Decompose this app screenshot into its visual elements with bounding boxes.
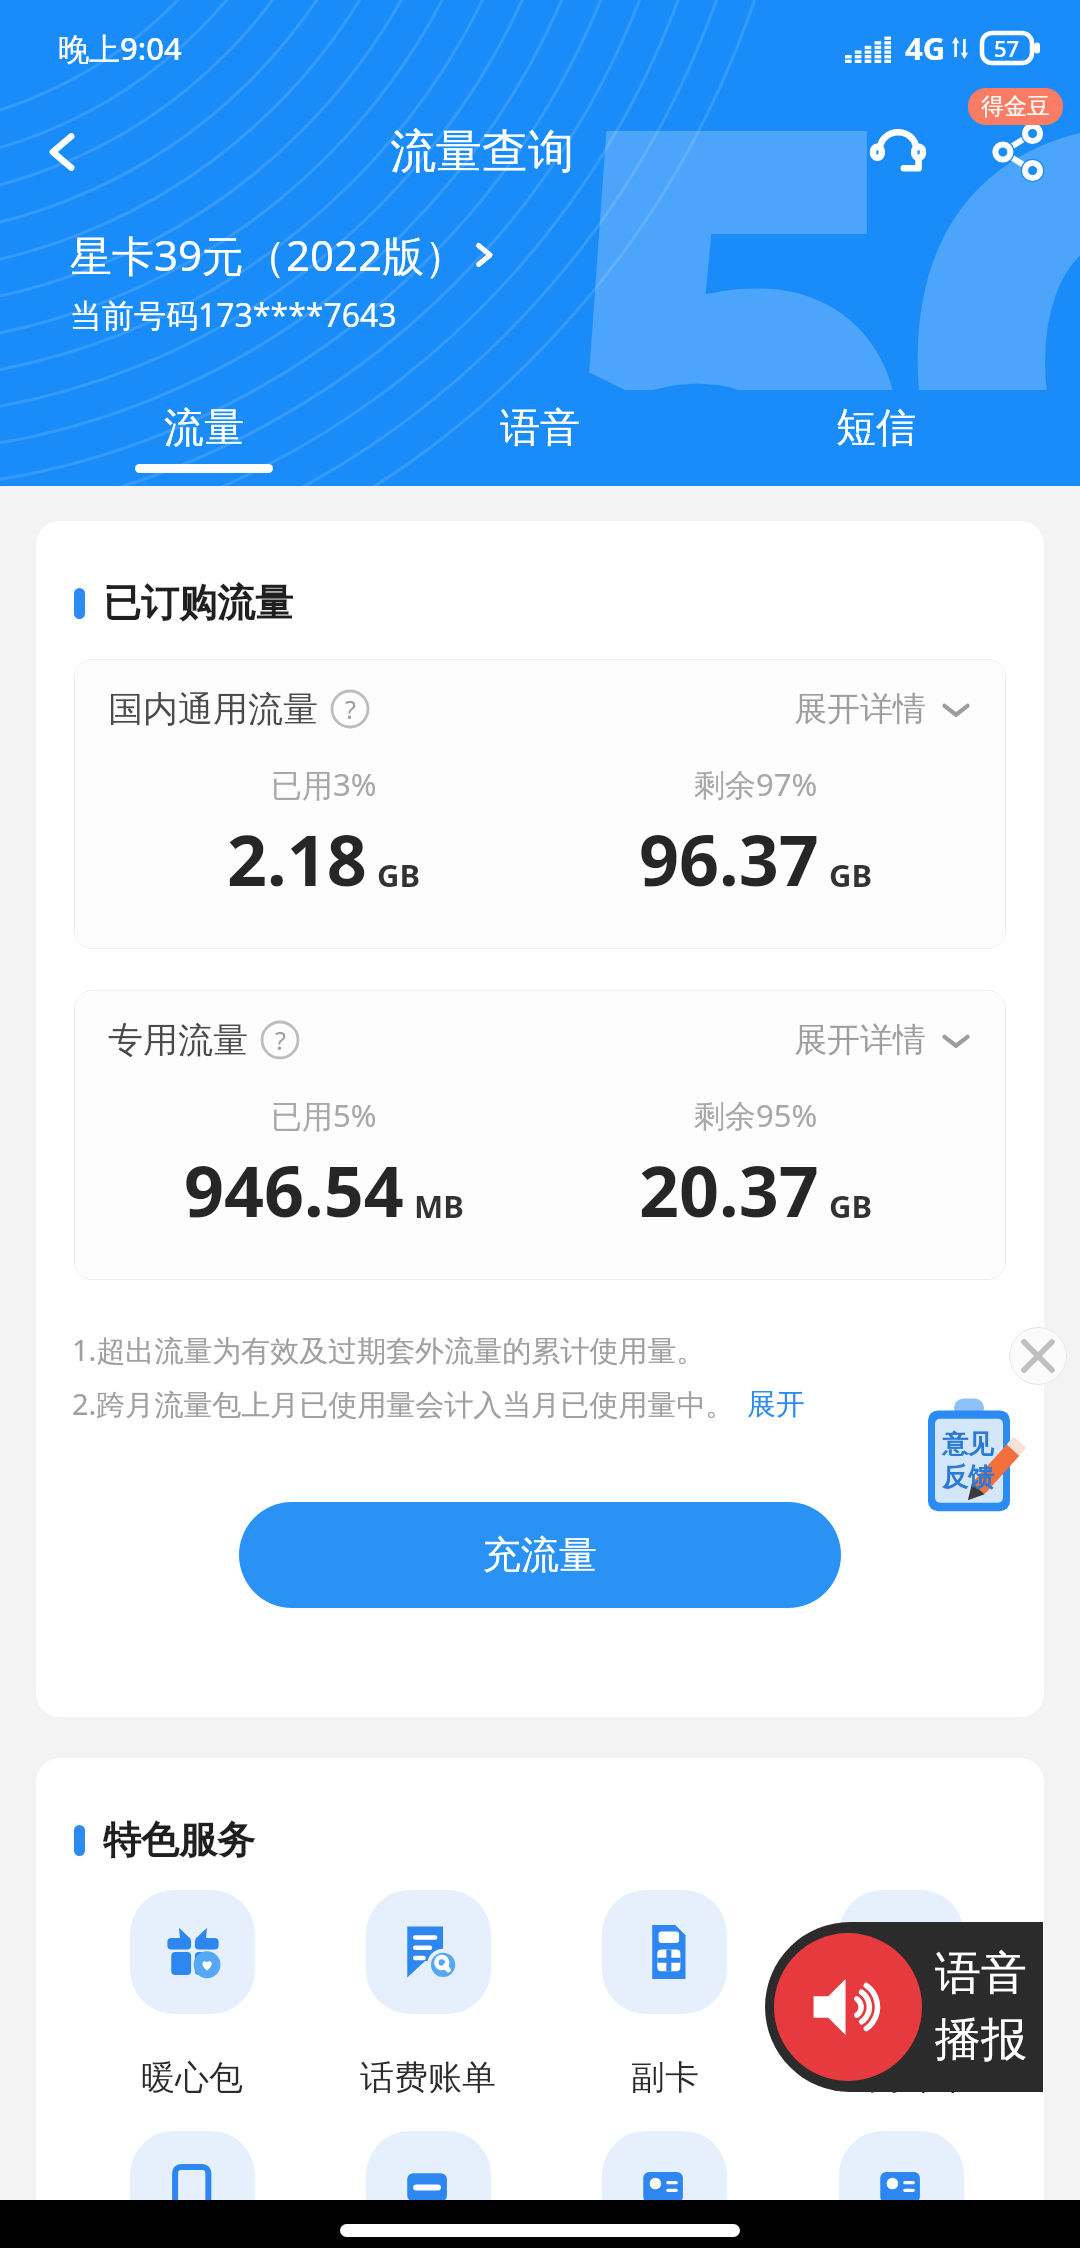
- button[interactable]: 短信: [708, 398, 1044, 486]
- staticText: 播报: [935, 2011, 1027, 2069]
- staticText: 话费账单: [360, 2056, 496, 2099]
- staticText: 充流量: [483, 1531, 597, 1579]
- staticText: 反馈: [942, 1461, 994, 1494]
- button[interactable]: 国内通用流量: [74, 659, 1006, 949]
- button[interactable]: Close: [1009, 1327, 1067, 1385]
- button[interactable]: Customer service: [840, 96, 956, 208]
- staticText: 专用流量: [108, 1018, 248, 1062]
- staticText: 意见: [942, 1428, 994, 1461]
- button[interactable]: 话费账单: [310, 1890, 546, 2099]
- staticText: 已用3%: [271, 763, 377, 805]
- staticText: ?: [345, 692, 356, 726]
- staticText: 96.37: [639, 811, 819, 906]
- staticText: 已用5%: [271, 1094, 377, 1136]
- staticText: GB: [377, 854, 421, 896]
- staticText: 展开详情: [794, 688, 926, 730]
- staticText: 得金豆: [981, 92, 1050, 121]
- button[interactable]: 星卡39元（2022版）: [70, 226, 501, 283]
- staticText: 星卡39元（2022版）: [70, 226, 467, 283]
- button[interactable]: 语音: [372, 398, 708, 486]
- button[interactable]: 展开: [747, 1386, 805, 1423]
- staticText: 2.跨月流量包上月已使用量会计入当月已使用量中。: [72, 1384, 735, 1424]
- button[interactable]: 流量: [36, 398, 372, 486]
- staticText: 特色服务: [103, 1816, 255, 1864]
- staticText: 流量查询: [390, 123, 574, 181]
- button[interactable]: Feedback: [924, 1396, 1024, 1516]
- button[interactable]: 套餐变更: [310, 2131, 546, 2248]
- staticText: 暖心包: [141, 2056, 243, 2099]
- staticText: 剩余95%: [694, 1094, 818, 1136]
- staticText: 2.18: [227, 811, 367, 906]
- staticText: 5G: [552, 0, 1080, 390]
- button[interactable]: 得金豆: [968, 88, 1063, 125]
- button[interactable]: Back: [0, 96, 124, 208]
- staticText: 语音: [935, 1945, 1027, 2003]
- staticText: ?: [275, 1023, 286, 1057]
- staticText: 20.37: [639, 1142, 819, 1237]
- button[interactable]: Voice broadcast: [765, 1922, 1043, 2092]
- staticText: 946.54: [184, 1142, 404, 1237]
- staticText: 已订购流量: [103, 579, 293, 627]
- staticText: 国内通用流量: [108, 687, 318, 731]
- staticText: GB: [829, 854, 873, 896]
- staticText: GB: [829, 1185, 873, 1227]
- staticText: 1.超出流量为有效及过期套外流量的累计使用量。: [72, 1330, 706, 1370]
- staticText: 上网详单: [834, 2056, 970, 2099]
- staticText: 57: [994, 33, 1020, 63]
- staticText: 当前号码173****7643: [70, 293, 397, 337]
- button[interactable]: 号码服务: [783, 2131, 1020, 2248]
- button[interactable]: 实名登记: [546, 2131, 783, 2248]
- button[interactable]: Share: [956, 96, 1080, 208]
- button[interactable]: 停复机: [74, 2131, 310, 2248]
- staticText: 剩余97%: [694, 763, 818, 805]
- staticText: 副卡: [631, 2056, 699, 2099]
- button[interactable]: 暖心包: [74, 1890, 310, 2099]
- staticText: 短信: [836, 402, 916, 452]
- staticText: 流量: [164, 402, 244, 452]
- staticText: MB: [414, 1185, 464, 1227]
- staticText: 晚上9:04: [58, 27, 182, 69]
- staticText: 展开详情: [794, 1019, 926, 1061]
- button[interactable]: 充流量: [239, 1502, 841, 1608]
- button[interactable]: 上网详单: [783, 1890, 1020, 2099]
- staticText: 语音: [500, 402, 580, 452]
- button[interactable]: 副卡: [546, 1890, 783, 2099]
- staticText: 4G: [905, 27, 946, 69]
- button[interactable]: 专用流量: [74, 990, 1006, 1280]
- staticText: 展开: [747, 1386, 805, 1423]
